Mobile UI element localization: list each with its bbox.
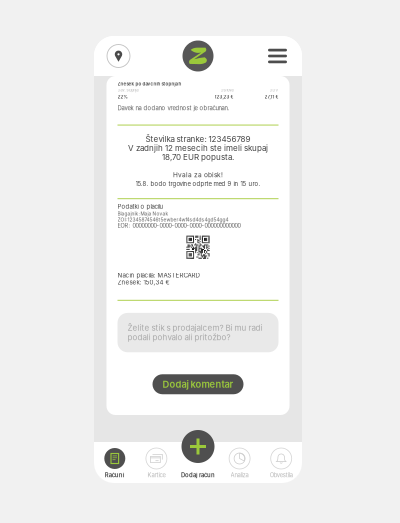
staticText: 18,70 EUR popusta. (162, 152, 234, 162)
button[interactable]: Meni (264, 42, 291, 69)
staticText: Obvestila (270, 472, 293, 479)
staticText: Hvala za obisk! (173, 171, 223, 179)
staticText: 15.8. bodo trgovine odprte med 9 in 15 u… (135, 180, 260, 187)
staticText: Dodaj račun (181, 472, 215, 479)
button[interactable]: Dodaj komentar (152, 374, 243, 394)
staticText: 123,23 € (214, 94, 233, 100)
staticText: Način plačila: MASTERCARD (117, 272, 199, 279)
staticText: Dav. stopnja (117, 88, 138, 92)
button[interactable]: Analiza (219, 448, 260, 479)
staticText: Blagajnik: Maja Novak (117, 211, 168, 216)
staticText: ZOI: 12345874546t5ewber4wf4sd4ds4gd54gg4 (117, 217, 228, 223)
staticText: Računi (105, 472, 125, 479)
staticText: Podatki o plačilu (117, 203, 163, 210)
staticText: V zadnjih 12 mesecih ste imeli skupaj (128, 143, 268, 153)
button[interactable]: Računi (94, 448, 136, 479)
staticText: Želite stik s prodajalcem? Bi mu radi po… (127, 323, 262, 342)
staticText: Dodaj komentar (162, 379, 233, 390)
button[interactable]: Lokacija (105, 42, 132, 69)
button[interactable]: Obvestila (260, 448, 302, 479)
button[interactable]: Dodaj račun (177, 448, 219, 479)
staticText: Znesek po davčnih stopnjah (117, 81, 181, 87)
staticText: 27,11 € (264, 94, 278, 100)
staticText: 22% (117, 94, 127, 100)
staticText: Znesek: 150,34 € (117, 279, 169, 286)
staticText: Davek na dodano vrednost je obračunan. (117, 104, 229, 112)
staticText: EOR: 00000000-0000-0000-0000-00000000000… (117, 222, 240, 229)
staticText: Osnova (220, 88, 233, 92)
staticText: Številka stranke: 123456789 (145, 134, 250, 144)
staticText: Analiza (231, 472, 249, 479)
button[interactable]: Dodaj račun (181, 430, 214, 463)
button[interactable]: Kartice (136, 448, 177, 479)
staticText: Kartice (147, 472, 165, 479)
staticText: DDV (269, 88, 278, 92)
